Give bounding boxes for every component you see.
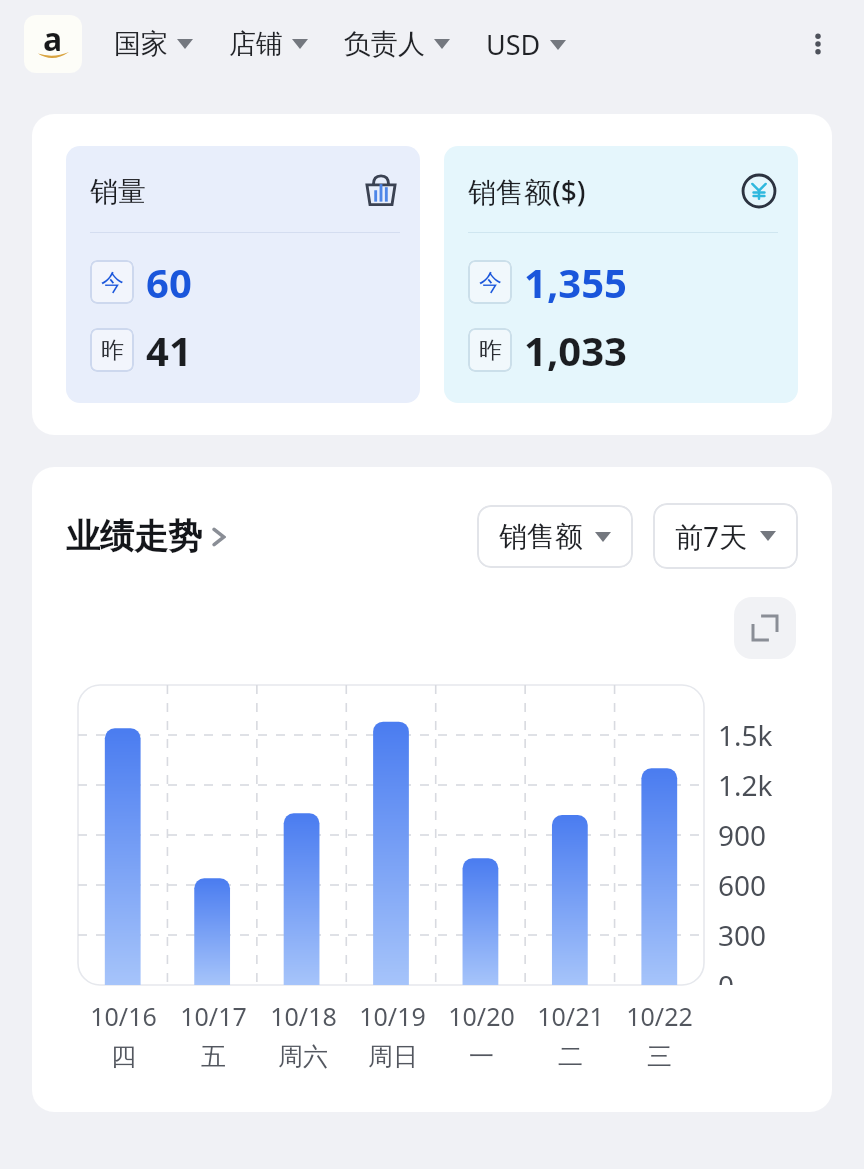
- button[interactable]: 销售额: [477, 505, 633, 568]
- staticText: 1,355: [524, 255, 627, 309]
- staticText: 600: [718, 866, 767, 904]
- button[interactable]: 业绩走势: [66, 511, 226, 562]
- staticText: 国家: [114, 27, 168, 61]
- staticText: 1,033: [524, 323, 627, 377]
- staticText: 周六: [278, 1041, 328, 1072]
- staticText: 一: [469, 1041, 494, 1072]
- staticText: 10/21: [537, 999, 604, 1033]
- staticText: 41: [146, 323, 192, 377]
- staticText: 三: [647, 1041, 672, 1072]
- staticText: 昨: [101, 336, 124, 365]
- staticText: 昨: [479, 336, 502, 365]
- button[interactable]: 销量: [66, 146, 420, 403]
- button[interactable]: 销售额($): [444, 146, 798, 403]
- staticText: 今: [479, 268, 502, 297]
- staticText: 10/19: [359, 999, 426, 1033]
- button[interactable]: Expand chart: [734, 597, 796, 659]
- staticText: 前7天: [675, 517, 748, 555]
- staticText: 负责人: [344, 27, 425, 61]
- staticText: 300: [718, 916, 767, 954]
- staticText: 10/20: [448, 999, 515, 1033]
- staticText: 销售额: [499, 519, 583, 554]
- staticText: 60: [146, 255, 192, 309]
- staticText: 五: [201, 1041, 226, 1072]
- staticText: USD: [486, 26, 541, 63]
- button[interactable]: 国家: [112, 21, 195, 67]
- button[interactable]: 店铺: [227, 21, 310, 67]
- button[interactable]: 前7天: [653, 503, 798, 569]
- staticText: 销量: [90, 174, 146, 209]
- staticText: 业绩走势: [66, 515, 202, 558]
- staticText: 今: [101, 268, 124, 297]
- staticText: 10/22: [626, 999, 693, 1033]
- staticText: 1.2k: [718, 766, 773, 804]
- button[interactable]: More options: [792, 18, 844, 70]
- staticText: 周日: [368, 1041, 418, 1072]
- staticText: 1.5k: [718, 716, 773, 754]
- staticText: 10/16: [90, 999, 157, 1033]
- staticText: 店铺: [229, 27, 283, 61]
- staticText: 销售额($): [468, 172, 586, 210]
- staticText: 二: [558, 1041, 583, 1072]
- button[interactable]: Amazon: [24, 15, 82, 73]
- staticText: 0: [718, 966, 735, 985]
- button[interactable]: USD: [484, 20, 568, 69]
- staticText: 900: [718, 816, 767, 854]
- staticText: a: [43, 17, 63, 61]
- staticText: 10/17: [180, 999, 247, 1033]
- staticText: 10/18: [270, 999, 337, 1033]
- staticText: 四: [111, 1041, 136, 1072]
- button[interactable]: 负责人: [342, 21, 452, 67]
